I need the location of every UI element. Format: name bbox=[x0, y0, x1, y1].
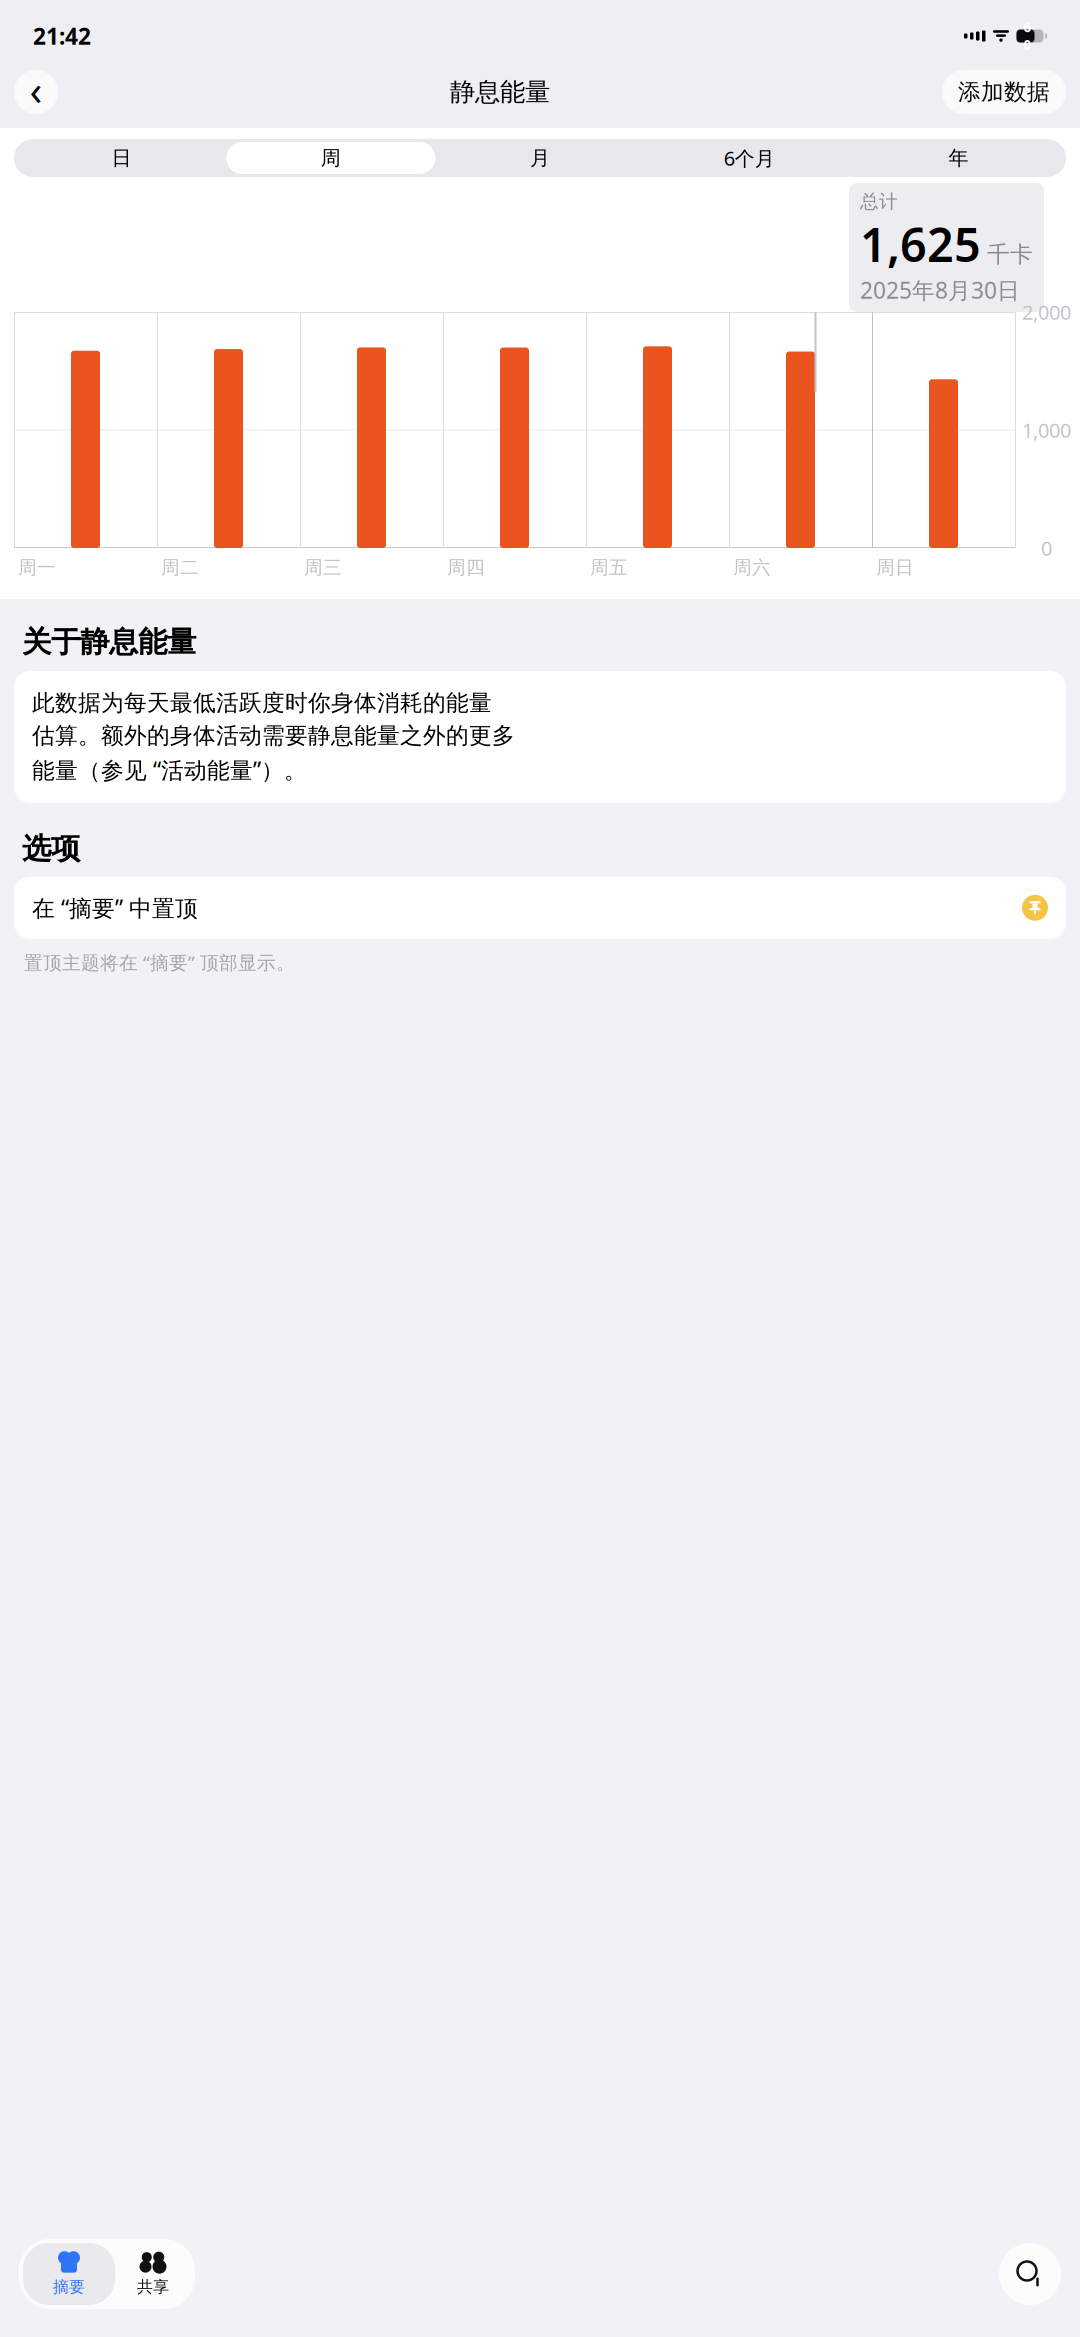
button[interactable]: 共享 bbox=[115, 2243, 191, 2305]
staticText: 周一 bbox=[18, 556, 56, 579]
button[interactable]: 返回 bbox=[14, 70, 58, 114]
staticText: 周五 bbox=[590, 556, 628, 579]
staticText: ‹ bbox=[29, 62, 42, 117]
staticText: 关于静息能量 bbox=[22, 624, 196, 660]
staticText: 估算。额外的身体活动需要静息能量之外的更多 bbox=[32, 722, 515, 750]
button[interactable]: 年 bbox=[854, 142, 1063, 174]
staticText: 2,000 bbox=[1022, 299, 1071, 325]
staticText: 摘要 bbox=[53, 2277, 85, 2297]
staticText: 周六 bbox=[733, 556, 771, 579]
staticText: 周三 bbox=[304, 556, 342, 579]
staticText: 共享 bbox=[137, 2277, 169, 2297]
staticText: 60 bbox=[1023, 18, 1031, 54]
staticText: 总计 bbox=[860, 190, 898, 213]
button[interactable]: 6个月 bbox=[645, 142, 854, 174]
button[interactable]: 日 bbox=[17, 142, 226, 174]
staticText: 月 bbox=[530, 146, 550, 170]
staticText: 1,000 bbox=[1022, 417, 1071, 443]
button[interactable]: 周 bbox=[226, 142, 435, 174]
staticText: 2025年8月30日 bbox=[860, 275, 1020, 305]
staticText: 周四 bbox=[447, 556, 485, 579]
staticText: 周 bbox=[321, 146, 341, 170]
staticText: 周日 bbox=[876, 556, 914, 579]
button[interactable]: 搜索 bbox=[999, 2243, 1061, 2305]
staticText: 添加数据 bbox=[958, 78, 1050, 106]
staticText: 在 “摘要” 中置顶 bbox=[32, 893, 198, 923]
staticText: 选项 bbox=[22, 831, 80, 867]
staticText: 0 bbox=[1041, 535, 1052, 561]
button[interactable]: 摘要 bbox=[23, 2243, 115, 2305]
button[interactable]: 在 “摘要” 中置顶 bbox=[0, 877, 1080, 939]
button[interactable]: 添加数据 bbox=[942, 70, 1066, 114]
staticText: 日 bbox=[112, 146, 132, 170]
staticText: 1,625 bbox=[860, 213, 981, 275]
staticText: 置顶主题将在 “摘要” 顶部显示。 bbox=[24, 950, 295, 975]
staticText: 能量（参见 “活动能量”）。 bbox=[32, 755, 307, 785]
staticText: 千卡 bbox=[987, 241, 1033, 268]
staticText: 年 bbox=[948, 146, 968, 170]
staticText: 此数据为每天最低活跃度时你身体消耗的能量 bbox=[32, 689, 492, 717]
button[interactable]: 月 bbox=[435, 142, 645, 174]
staticText: 21:42 bbox=[33, 21, 91, 51]
staticText: 静息能量 bbox=[450, 76, 550, 107]
staticText: 周二 bbox=[161, 556, 199, 579]
staticText: 6个月 bbox=[724, 145, 775, 171]
